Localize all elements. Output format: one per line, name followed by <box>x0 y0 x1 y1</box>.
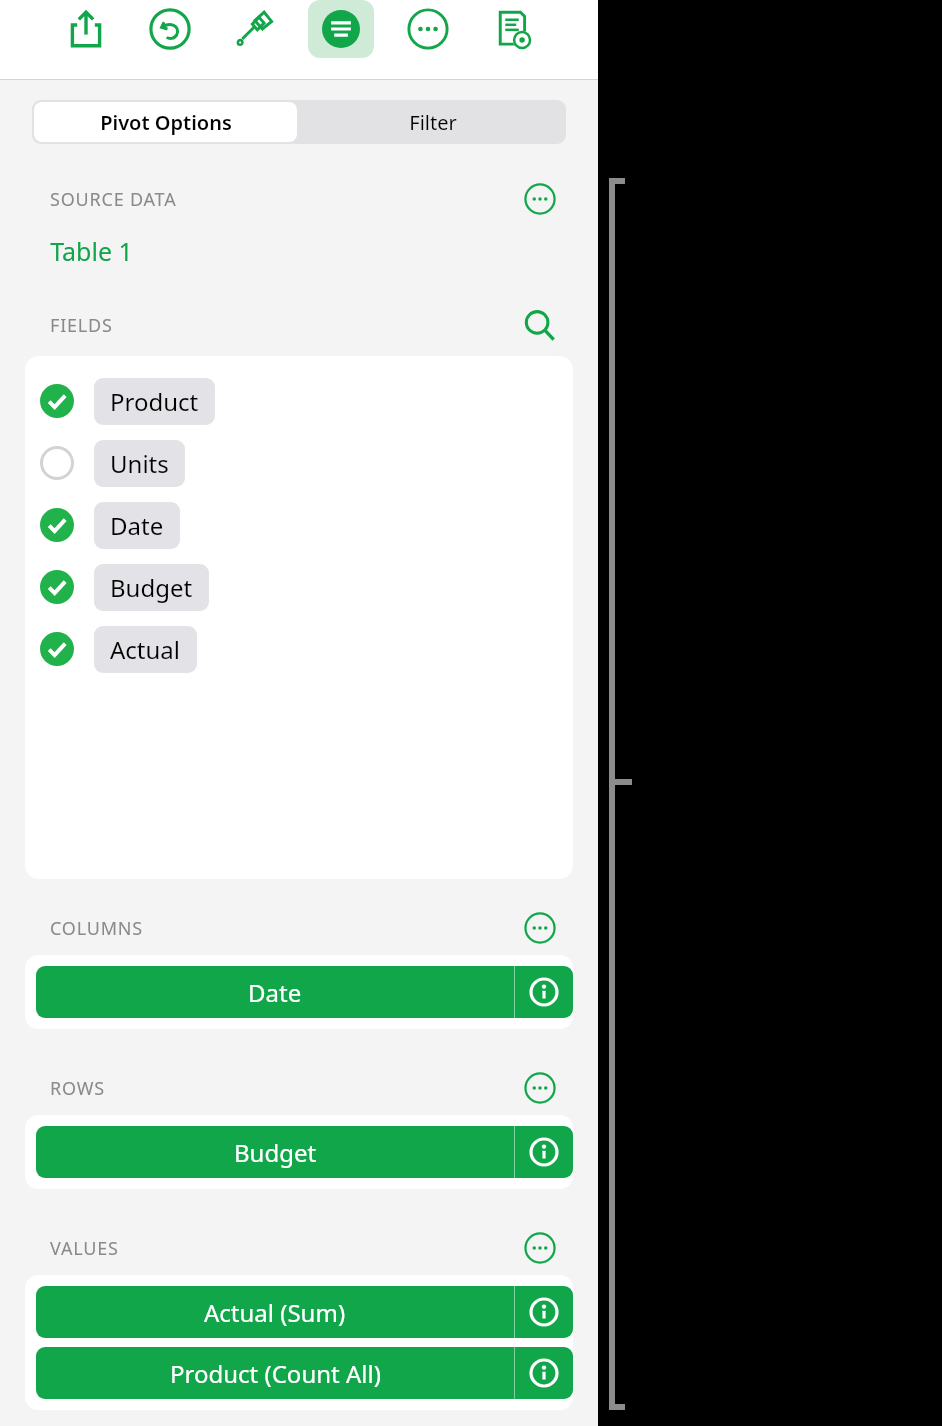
button[interactable]: Actual (Sum) <box>36 1286 573 1338</box>
staticText: Filter <box>409 109 457 136</box>
button[interactable]: Product (Count All) <box>36 1347 573 1399</box>
staticText: Product <box>110 385 199 418</box>
staticText: Table 1 <box>50 234 133 268</box>
staticText: Units <box>110 447 169 480</box>
staticText: Actual (Sum) <box>204 1296 346 1329</box>
staticText: Pivot Options <box>100 109 232 136</box>
button[interactable]: Info about Date <box>515 966 573 1018</box>
button[interactable]: Budget <box>25 556 573 618</box>
button[interactable]: VALUES options <box>520 1231 560 1265</box>
button[interactable]: Info about Product (Count All) <box>515 1347 573 1399</box>
staticText: SOURCE DATA <box>50 187 177 212</box>
button[interactable]: ROWS options <box>520 1071 560 1105</box>
button[interactable]: Actual <box>25 618 573 680</box>
button[interactable]: Share <box>56 0 116 58</box>
button[interactable]: COLUMNS options <box>520 911 560 945</box>
button[interactable]: Format <box>308 0 374 58</box>
button[interactable]: Undo <box>140 0 200 58</box>
button[interactable]: Product <box>25 370 573 432</box>
button[interactable]: SOURCE DATA options <box>520 182 560 216</box>
staticText: COLUMNS <box>50 916 143 941</box>
button[interactable]: Info about Budget <box>515 1126 573 1178</box>
button[interactable]: Units <box>25 432 573 494</box>
button[interactable]: Pivot Options <box>34 102 297 142</box>
staticText: Budget <box>110 571 193 604</box>
button[interactable]: Document options <box>482 0 542 58</box>
staticText: VALUES <box>50 1236 119 1261</box>
staticText: FIELDS <box>50 313 113 338</box>
staticText: Date <box>110 509 164 542</box>
button[interactable]: More <box>398 0 458 58</box>
button[interactable]: Info about Actual (Sum) <box>515 1286 573 1338</box>
staticText: ROWS <box>50 1076 105 1101</box>
staticText: Actual <box>110 633 181 666</box>
button[interactable]: Format brush <box>224 0 284 58</box>
staticText: Product (Count All) <box>170 1357 381 1390</box>
staticText: Budget <box>234 1136 317 1169</box>
button[interactable]: Budget <box>36 1126 573 1178</box>
button[interactable]: Date <box>36 966 573 1018</box>
button[interactable]: Filter <box>299 100 566 144</box>
staticText: Date <box>248 976 302 1009</box>
button[interactable]: FIELDS options <box>520 308 560 342</box>
button[interactable]: Date <box>25 494 573 556</box>
